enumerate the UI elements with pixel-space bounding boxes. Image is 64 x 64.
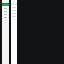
button[interactable] — [3, 10, 8, 12]
button[interactable] — [12, 9, 16, 11]
button[interactable] — [3, 7, 8, 9]
button[interactable] — [3, 16, 8, 18]
button[interactable] — [12, 15, 16, 17]
button[interactable] — [12, 12, 16, 14]
button[interactable] — [3, 13, 8, 15]
button[interactable] — [12, 6, 16, 8]
